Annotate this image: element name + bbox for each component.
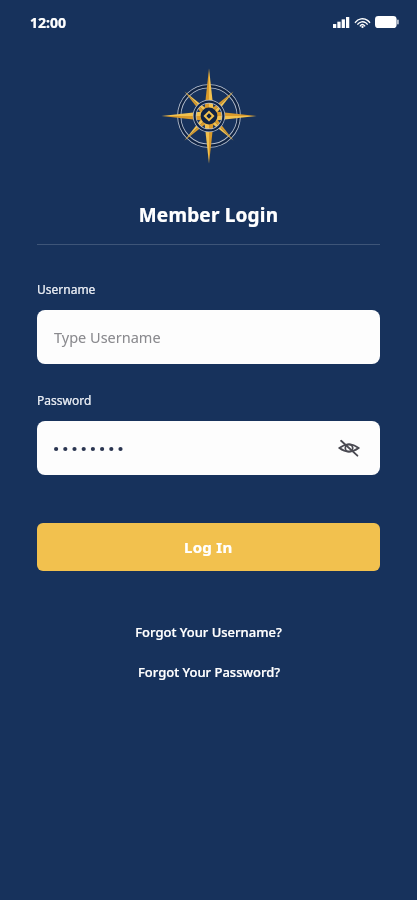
staticText: Member Login xyxy=(0,202,417,228)
staticText: Forgot Your Password? xyxy=(138,663,280,681)
button[interactable]: Show password xyxy=(332,431,366,465)
staticText: Type Username xyxy=(54,327,161,347)
staticText: 12:00 xyxy=(30,13,66,32)
staticText: Password xyxy=(37,392,92,408)
button[interactable]: Forgot Your Password? xyxy=(0,659,417,685)
staticText: Forgot Your Username? xyxy=(135,623,282,641)
staticText: Username xyxy=(37,281,96,297)
staticText: Log In xyxy=(184,537,233,557)
button[interactable]: Log In xyxy=(37,523,380,571)
button[interactable]: Type Username xyxy=(37,310,380,364)
button[interactable]: Forgot Your Username? xyxy=(0,619,417,645)
button[interactable]: Show password xyxy=(37,421,380,475)
